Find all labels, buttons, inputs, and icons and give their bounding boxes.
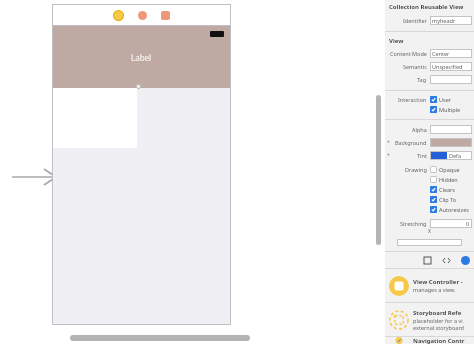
button[interactable]: Hidden bbox=[430, 176, 472, 183]
button[interactable] bbox=[430, 138, 472, 147]
button[interactable]: View Controller - bbox=[385, 269, 474, 302]
staticText: Identifier bbox=[403, 17, 427, 24]
staticText: Interaction bbox=[398, 96, 427, 103]
button[interactable]: Opaque bbox=[430, 166, 472, 173]
staticText: Opaque bbox=[439, 166, 460, 173]
staticText: + bbox=[387, 139, 390, 146]
staticText: X bbox=[428, 228, 431, 235]
staticText: Drawing bbox=[405, 166, 427, 173]
staticText: View bbox=[389, 37, 404, 45]
staticText: Clip To Bounds bbox=[439, 196, 472, 203]
staticText: placeholder for a vi bbox=[413, 317, 463, 324]
staticText: Semantic bbox=[403, 63, 427, 70]
staticText: Hidden bbox=[439, 176, 458, 183]
button[interactable] bbox=[52, 88, 137, 148]
button[interactable] bbox=[430, 75, 472, 84]
button[interactable]: Multiple Touch bbox=[430, 106, 472, 113]
staticText: Content Mode bbox=[390, 50, 427, 57]
button[interactable]: Unspecified bbox=[430, 62, 472, 71]
staticText: Background bbox=[395, 139, 427, 146]
staticText: Multiple Touch bbox=[439, 106, 472, 113]
staticText: Clears Graphics bbox=[439, 186, 472, 193]
staticText: Unspecified bbox=[432, 63, 463, 70]
button[interactable] bbox=[430, 125, 472, 134]
staticText: Center bbox=[432, 50, 450, 57]
button[interactable]: Storyboard Refe bbox=[385, 303, 474, 336]
button[interactable]: User Interaction bbox=[430, 96, 472, 103]
staticText: Collection Reusable View bbox=[389, 3, 464, 11]
staticText: + bbox=[387, 152, 390, 159]
button[interactable]: Exit bbox=[161, 11, 170, 20]
button[interactable]: Center bbox=[430, 49, 472, 58]
staticText: Defa bbox=[449, 152, 462, 159]
button[interactable]: Object library bbox=[461, 256, 470, 265]
button[interactable]: Clears Graphics bbox=[430, 186, 472, 193]
staticText: manages a view. bbox=[413, 286, 456, 293]
button[interactable]: First responder bbox=[138, 11, 147, 20]
staticText: Tag bbox=[417, 76, 427, 83]
staticText: Stretching bbox=[400, 220, 427, 227]
staticText: Navigation Contr bbox=[413, 337, 465, 344]
button[interactable]: Clip To Bounds bbox=[430, 196, 472, 203]
staticText: Autoresizes bbox=[439, 206, 469, 213]
button[interactable]: Label bbox=[52, 26, 231, 88]
staticText: View Controller - bbox=[413, 278, 463, 286]
button[interactable]: Autoresizes bbox=[430, 206, 472, 213]
staticText: external storyboard bbox=[413, 324, 464, 331]
staticText: Storyboard Refe bbox=[413, 309, 462, 317]
staticText: Tint bbox=[417, 152, 427, 159]
button[interactable]: Defa bbox=[430, 151, 472, 160]
button[interactable]: Navigation Contr bbox=[385, 337, 474, 344]
button[interactable]: myheadr bbox=[430, 16, 472, 25]
button[interactable]: 0 bbox=[430, 219, 472, 228]
staticText: User Interaction bbox=[439, 96, 472, 103]
staticText: 0 bbox=[466, 220, 470, 227]
staticText: Label bbox=[131, 52, 152, 63]
staticText: myheadr bbox=[432, 17, 456, 24]
button[interactable]: Code snippet library bbox=[442, 256, 451, 265]
button[interactable]: File template library bbox=[423, 256, 432, 265]
staticText: Alpha bbox=[412, 126, 427, 133]
button[interactable]: View controller bbox=[113, 10, 124, 21]
